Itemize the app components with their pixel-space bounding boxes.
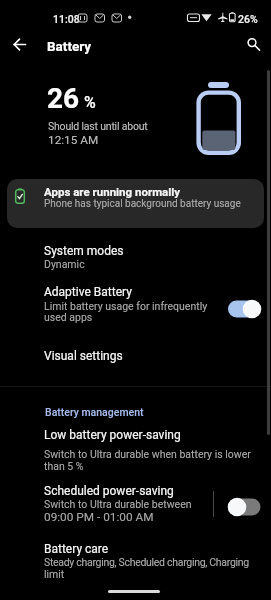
button[interactable] [0, 240, 271, 276]
staticText: Adaptive Battery [44, 285, 132, 299]
button[interactable] [0, 426, 271, 474]
staticText: Switch to Ultra durable when battery is … [44, 448, 251, 460]
button[interactable] [8, 33, 32, 57]
staticText: limit [44, 568, 65, 580]
staticText: Scheduled power-saving [44, 484, 174, 498]
staticText: Battery management [45, 406, 144, 418]
staticText: 26 [47, 82, 80, 115]
staticText: Low battery power-saving [44, 428, 181, 442]
staticText: Limit battery usage for infrequently [44, 300, 208, 312]
staticText: than 5 % [44, 460, 84, 472]
staticText: % [84, 93, 96, 112]
staticText: Battery [47, 38, 92, 54]
button[interactable] [0, 344, 271, 368]
staticText: 11:08 [53, 13, 80, 25]
staticText: Steady charging, Scheduled charging, Cha… [44, 556, 249, 568]
button[interactable]: Apps are running normally [7, 179, 264, 228]
button[interactable] [241, 32, 263, 54]
staticText: 12:15 AM [48, 133, 99, 147]
button[interactable] [228, 299, 262, 319]
staticText: Switch to Ultra durable between [44, 498, 192, 510]
staticText: used apps [44, 311, 93, 323]
staticText: Should last until about [48, 120, 148, 132]
button[interactable] [0, 482, 210, 528]
staticText: 26% [238, 13, 258, 25]
button[interactable] [0, 540, 271, 585]
staticText: Apps are running normally [44, 185, 181, 198]
staticText: Visual settings [44, 349, 123, 363]
staticText: System modes [44, 244, 124, 258]
button[interactable] [228, 497, 262, 517]
staticText: Phone has typical background battery usa… [44, 198, 241, 210]
staticText: Dynamic [44, 258, 85, 270]
button[interactable] [0, 282, 271, 322]
staticText: Battery care [44, 542, 109, 556]
staticText: 09:00 PM - 01:00 AM [44, 510, 154, 524]
